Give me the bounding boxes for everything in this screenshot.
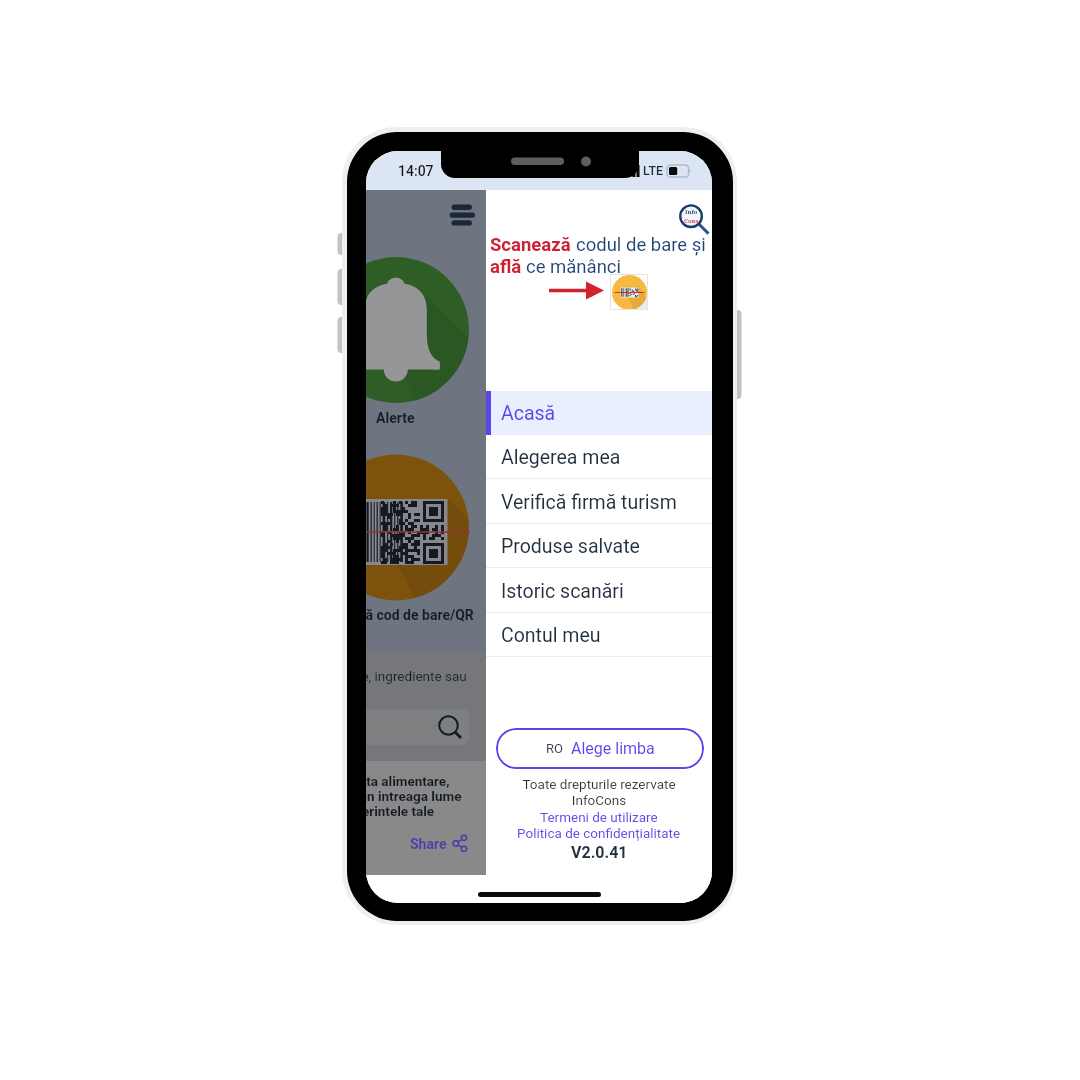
staticText: Share [410, 836, 447, 852]
staticText: Caută produse, ingrediente sau [366, 668, 467, 684]
staticText: Scanează cod de bare/QR [366, 607, 474, 623]
staticText: 14:07 [398, 163, 434, 179]
staticText: află [490, 256, 526, 278]
staticText: Cons [684, 217, 699, 225]
staticText: Alegerea mea [501, 446, 621, 469]
button[interactable]: Alegerea mea [486, 435, 712, 479]
staticText: Scanează [490, 234, 576, 256]
button[interactable]: Share [410, 835, 467, 852]
button[interactable]: Termeni de utilizare [540, 809, 658, 825]
staticText: codul de bare și [576, 234, 706, 256]
button[interactable]: Search [366, 709, 469, 745]
button[interactable]: Produse salvate [486, 524, 712, 568]
staticText: Verifică firmă turism [501, 491, 677, 514]
button[interactable]: Istoric scanări [486, 569, 712, 613]
staticText: Produse salvate [501, 535, 640, 558]
staticText: Alerte [376, 410, 415, 426]
staticText: potrivite cu cerintele tale [366, 803, 435, 819]
staticText: RO [546, 741, 563, 756]
staticText: Acasă [501, 402, 556, 425]
staticText: Info [685, 208, 698, 216]
button[interactable]: Acasă [486, 391, 712, 435]
staticText: Toate drepturile rezervate InfoCons [522, 776, 676, 809]
staticText: LTE [643, 163, 664, 178]
button[interactable]: RO [496, 728, 704, 769]
button[interactable]: Contul meu [486, 613, 712, 657]
button[interactable]: InfoCons logo [679, 205, 707, 233]
staticText: V2.0.41 [571, 843, 628, 862]
button[interactable]: Politica de confidențialitate [517, 825, 681, 841]
staticText: Istoric scanări [501, 580, 624, 603]
staticText: Contul meu [501, 624, 601, 647]
staticText: produse si servicii din intreaga lume [366, 788, 462, 804]
staticText: Informatii despre siguranta alimentare, [366, 773, 450, 789]
button[interactable]: Verifică firmă turism [486, 480, 712, 524]
staticText: Alege limba [571, 739, 655, 758]
button[interactable]: Scan barcode [610, 274, 648, 310]
staticText: ce mănânci [526, 256, 622, 278]
